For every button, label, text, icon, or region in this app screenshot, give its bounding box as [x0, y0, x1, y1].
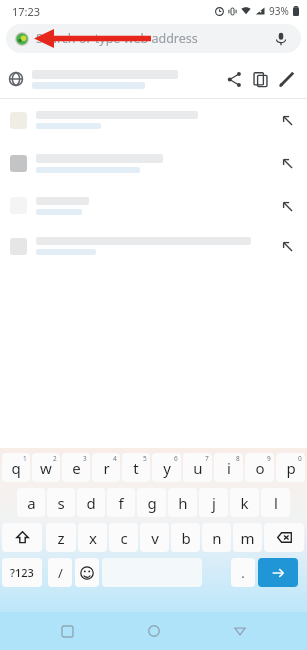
- staticText: j: [212, 493, 216, 513]
- button[interactable]: Insert suggestion: [275, 234, 299, 258]
- button[interactable]: Home: [135, 612, 173, 650]
- button[interactable]: t: [122, 453, 150, 482]
- staticText: k: [240, 493, 249, 513]
- button[interactable]: Backspace: [264, 523, 304, 552]
- staticText: x: [89, 528, 97, 548]
- staticText: m: [240, 528, 255, 548]
- staticText: z: [57, 528, 65, 548]
- button[interactable]: Insert suggestion: [275, 108, 299, 132]
- button[interactable]: Insert suggestion: [275, 194, 299, 218]
- button[interactable]: Voice search: [270, 28, 292, 50]
- staticText: b: [181, 528, 191, 548]
- button[interactable]: u: [183, 453, 212, 482]
- button[interactable]: p: [276, 453, 305, 482]
- button[interactable]: y: [152, 453, 181, 482]
- staticText: o: [255, 458, 265, 478]
- button[interactable]: Edit: [273, 66, 299, 92]
- button[interactable]: Insert suggestion: [0, 99, 307, 141]
- staticText: r: [103, 458, 110, 478]
- button[interactable]: Copy: [247, 66, 273, 92]
- button[interactable]: a: [17, 488, 45, 517]
- staticText: a: [27, 493, 36, 513]
- button[interactable]: i: [214, 453, 243, 482]
- button[interactable]: Insert suggestion: [0, 141, 307, 185]
- button[interactable]: n: [202, 523, 231, 552]
- button[interactable]: Back: [221, 612, 259, 650]
- button[interactable]: k: [230, 488, 259, 517]
- button[interactable]: c: [109, 523, 138, 552]
- staticText: v: [151, 528, 159, 548]
- staticText: 0: [298, 454, 302, 463]
- button[interactable]: x: [78, 523, 107, 552]
- button[interactable]: s: [47, 488, 75, 517]
- staticText: 9: [267, 454, 271, 463]
- button[interactable]: h: [168, 488, 197, 517]
- staticText: 2: [53, 454, 57, 463]
- button[interactable]: Insert suggestion: [275, 151, 299, 175]
- button[interactable]: Emoji: [75, 558, 99, 587]
- button[interactable]: Share: [0, 60, 307, 98]
- staticText: t: [133, 458, 139, 478]
- staticText: 5: [143, 454, 147, 463]
- staticText: w: [40, 458, 52, 478]
- button[interactable]: w: [32, 453, 60, 482]
- button[interactable]: q: [2, 453, 30, 482]
- button[interactable]: m: [233, 523, 262, 552]
- staticText: ?123: [10, 565, 34, 580]
- button[interactable]: d: [77, 488, 105, 517]
- staticText: g: [147, 493, 157, 513]
- button[interactable]: Insert suggestion: [0, 185, 307, 226]
- staticText: e: [72, 458, 81, 478]
- staticText: u: [193, 458, 203, 478]
- button[interactable]: Share: [221, 66, 247, 92]
- staticText: n: [212, 528, 222, 548]
- staticText: p: [286, 458, 296, 478]
- button[interactable]: b: [171, 523, 200, 552]
- button[interactable]: /: [48, 558, 72, 587]
- staticText: s: [57, 493, 65, 513]
- staticText: .: [241, 564, 245, 582]
- staticText: /: [58, 564, 63, 582]
- button[interactable]: o: [245, 453, 274, 482]
- button[interactable]: Recents: [48, 612, 86, 650]
- staticText: c: [120, 528, 128, 548]
- button[interactable]: Insert suggestion: [0, 226, 307, 266]
- button[interactable]: Shift: [2, 523, 42, 552]
- staticText: 3: [83, 454, 87, 463]
- button[interactable]: f: [107, 488, 135, 517]
- staticText: q: [11, 458, 21, 478]
- button[interactable]: j: [199, 488, 228, 517]
- staticText: h: [178, 493, 188, 513]
- button[interactable]: g: [137, 488, 166, 517]
- staticText: i: [227, 458, 231, 478]
- button[interactable]: r: [92, 453, 120, 482]
- button[interactable]: .: [231, 558, 255, 587]
- button[interactable]: ?123: [2, 558, 42, 587]
- staticText: 1: [23, 454, 27, 463]
- button[interactable]: Search or type web address: [6, 24, 301, 53]
- staticText: 93%: [269, 4, 289, 18]
- button[interactable]: l: [261, 488, 290, 517]
- staticText: 6: [174, 454, 178, 463]
- button[interactable]: v: [140, 523, 169, 552]
- button[interactable]: e: [62, 453, 90, 482]
- staticText: Search or type web address: [36, 30, 198, 47]
- staticText: 17:23: [12, 4, 41, 19]
- button[interactable]: z: [46, 523, 76, 552]
- staticText: 7: [205, 454, 209, 463]
- staticText: y: [163, 458, 171, 478]
- button[interactable]: Go: [258, 558, 298, 587]
- staticText: l: [274, 493, 278, 513]
- staticText: f: [118, 493, 124, 513]
- staticText: d: [86, 493, 96, 513]
- staticText: 8: [236, 454, 240, 463]
- staticText: 4: [113, 454, 117, 463]
